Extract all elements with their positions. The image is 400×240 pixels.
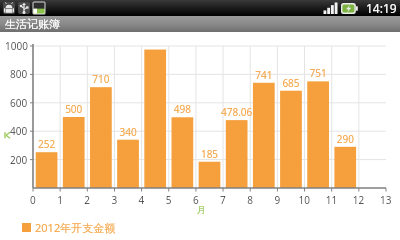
other: Signal strength — [323, 2, 338, 14]
other: 3G network — [32, 1, 46, 15]
other: System notification — [2, 1, 16, 15]
button[interactable] — [0, 16, 400, 32]
other: Battery charging — [341, 3, 358, 14]
other: USB connected — [17, 1, 31, 15]
button[interactable] — [0, 32, 400, 240]
